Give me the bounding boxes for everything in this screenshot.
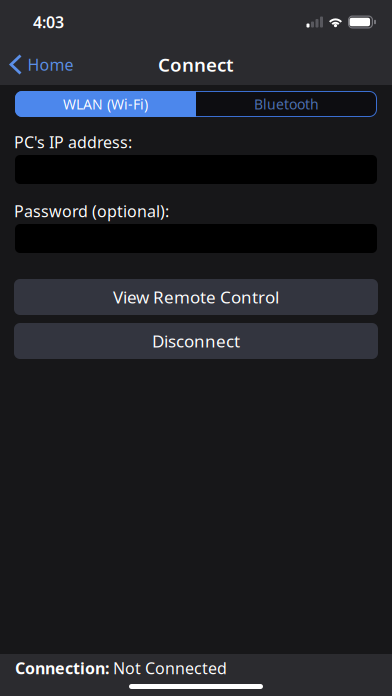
staticText: Not Connected xyxy=(109,657,227,679)
staticText: Disconnect xyxy=(152,329,240,353)
staticText: Home xyxy=(27,54,73,75)
staticText: 4:03 xyxy=(33,11,64,33)
staticText: PC's IP address: xyxy=(14,131,132,153)
button[interactable]: Bluetooth xyxy=(196,91,377,117)
staticText: Connection: xyxy=(15,657,109,679)
staticText: Connect xyxy=(158,52,234,77)
staticText: Password (optional): xyxy=(14,200,169,222)
staticText: Bluetooth xyxy=(254,94,319,114)
staticText: WLAN (Wi-Fi) xyxy=(63,94,148,114)
button[interactable]: WLAN (Wi-Fi) xyxy=(15,91,196,117)
button[interactable]: Back to Home xyxy=(0,54,73,75)
button[interactable]: View Remote Control xyxy=(14,279,378,315)
staticText: View Remote Control xyxy=(113,285,279,309)
button[interactable]: Disconnect xyxy=(14,323,378,359)
